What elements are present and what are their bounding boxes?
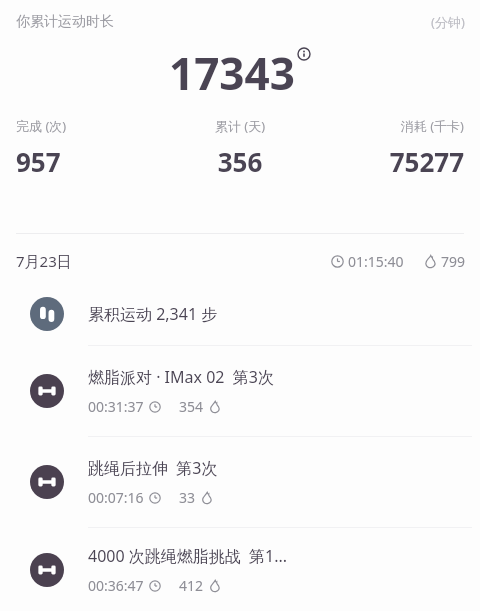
staticText: 33 [179, 488, 196, 507]
staticText: 00:36:47 [88, 576, 144, 595]
staticText: 你累计运动时长 [16, 13, 114, 31]
button[interactable]: 累计 (天) [160, 117, 320, 179]
staticText: 799 [441, 252, 466, 271]
button[interactable]: 4000 次跳绳燃脂挑战 第1... [0, 528, 480, 611]
button[interactable]: 消耗 (千卡) [320, 117, 464, 179]
staticText: 完成 (次) [16, 117, 160, 135]
staticText: 累积运动 2,341 步 [88, 303, 218, 325]
staticText: 354 [179, 397, 204, 416]
staticText: 跳绳后拉伸 第3次 [88, 457, 218, 479]
staticText: 消耗 (千卡) [320, 117, 464, 135]
button[interactable]: 完成 (次) [16, 117, 160, 179]
staticText: 累计 (天) [160, 117, 320, 135]
staticText: 燃脂派对 · IMax 02 第3次 [88, 366, 274, 388]
staticText: 957 [16, 144, 160, 179]
staticText: 00:31:37 [88, 397, 144, 416]
button[interactable]: 跳绳后拉伸 第3次 [0, 437, 480, 527]
staticText: 412 [179, 576, 204, 595]
button[interactable]: Info [297, 47, 311, 61]
button[interactable]: 燃脂派对 · IMax 02 第3次 [0, 346, 480, 436]
staticText: (分钟) [431, 13, 465, 31]
staticText: 00:07:16 [88, 488, 144, 507]
staticText: 356 [160, 144, 320, 179]
staticText: 7月23日 [16, 251, 72, 271]
staticText: 75277 [320, 144, 464, 179]
button[interactable]: 累积运动 2,341 步 [0, 283, 480, 345]
staticText: 01:15:40 [348, 252, 404, 271]
staticText: 17343 [169, 43, 295, 103]
staticText: 4000 次跳绳燃脂挑战 第1... [88, 545, 288, 567]
